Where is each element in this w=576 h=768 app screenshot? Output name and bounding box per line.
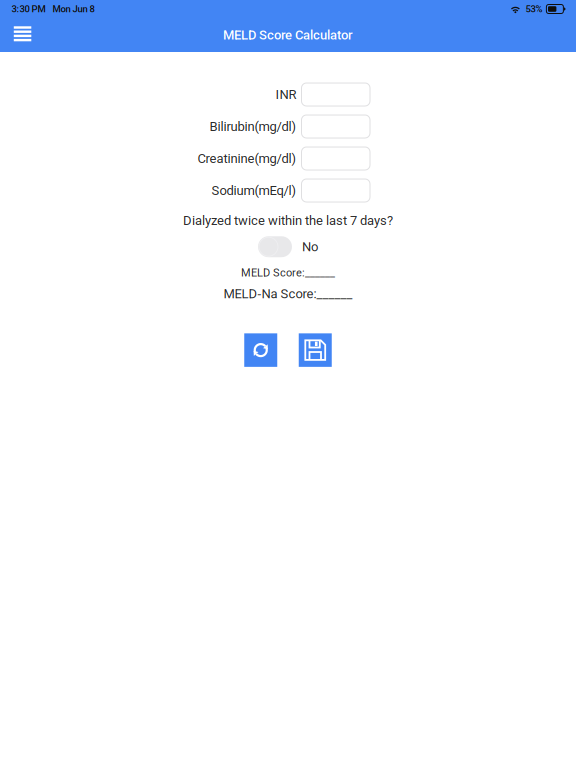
staticText: MELD Score Calculator: [223, 27, 353, 43]
staticText: 53%: [525, 3, 542, 14]
staticText: MELD-Na Score:______: [223, 286, 352, 301]
staticText: Bilirubin(mg/dl): [209, 119, 296, 134]
button[interactable]: Menu: [0, 18, 45, 52]
staticText: 3:30 PM: [11, 3, 45, 14]
staticText: Creatinine(mg/dl): [197, 151, 296, 166]
button[interactable]: Dialyzed twice within the last 7 days: [258, 236, 292, 257]
staticText: Dialyzed twice within the last 7 days?: [183, 213, 393, 228]
staticText: Mon Jun 8: [52, 3, 94, 14]
staticText: Sodium(mEq/l): [211, 183, 296, 198]
staticText: MELD Score:______: [241, 266, 335, 279]
staticText: INR: [275, 87, 296, 102]
button[interactable]: Save: [299, 333, 332, 367]
staticText: No: [302, 239, 318, 254]
button[interactable]: Reset: [244, 333, 277, 367]
